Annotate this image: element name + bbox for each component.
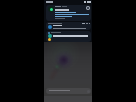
- button[interactable]: Expand notification: [46, 5, 91, 21]
- button[interactable]: Expand notification: [86, 6, 90, 10]
- button[interactable]: Search: [46, 88, 91, 94]
- button[interactable]: [46, 22, 91, 30]
- button[interactable]: [46, 31, 91, 42]
